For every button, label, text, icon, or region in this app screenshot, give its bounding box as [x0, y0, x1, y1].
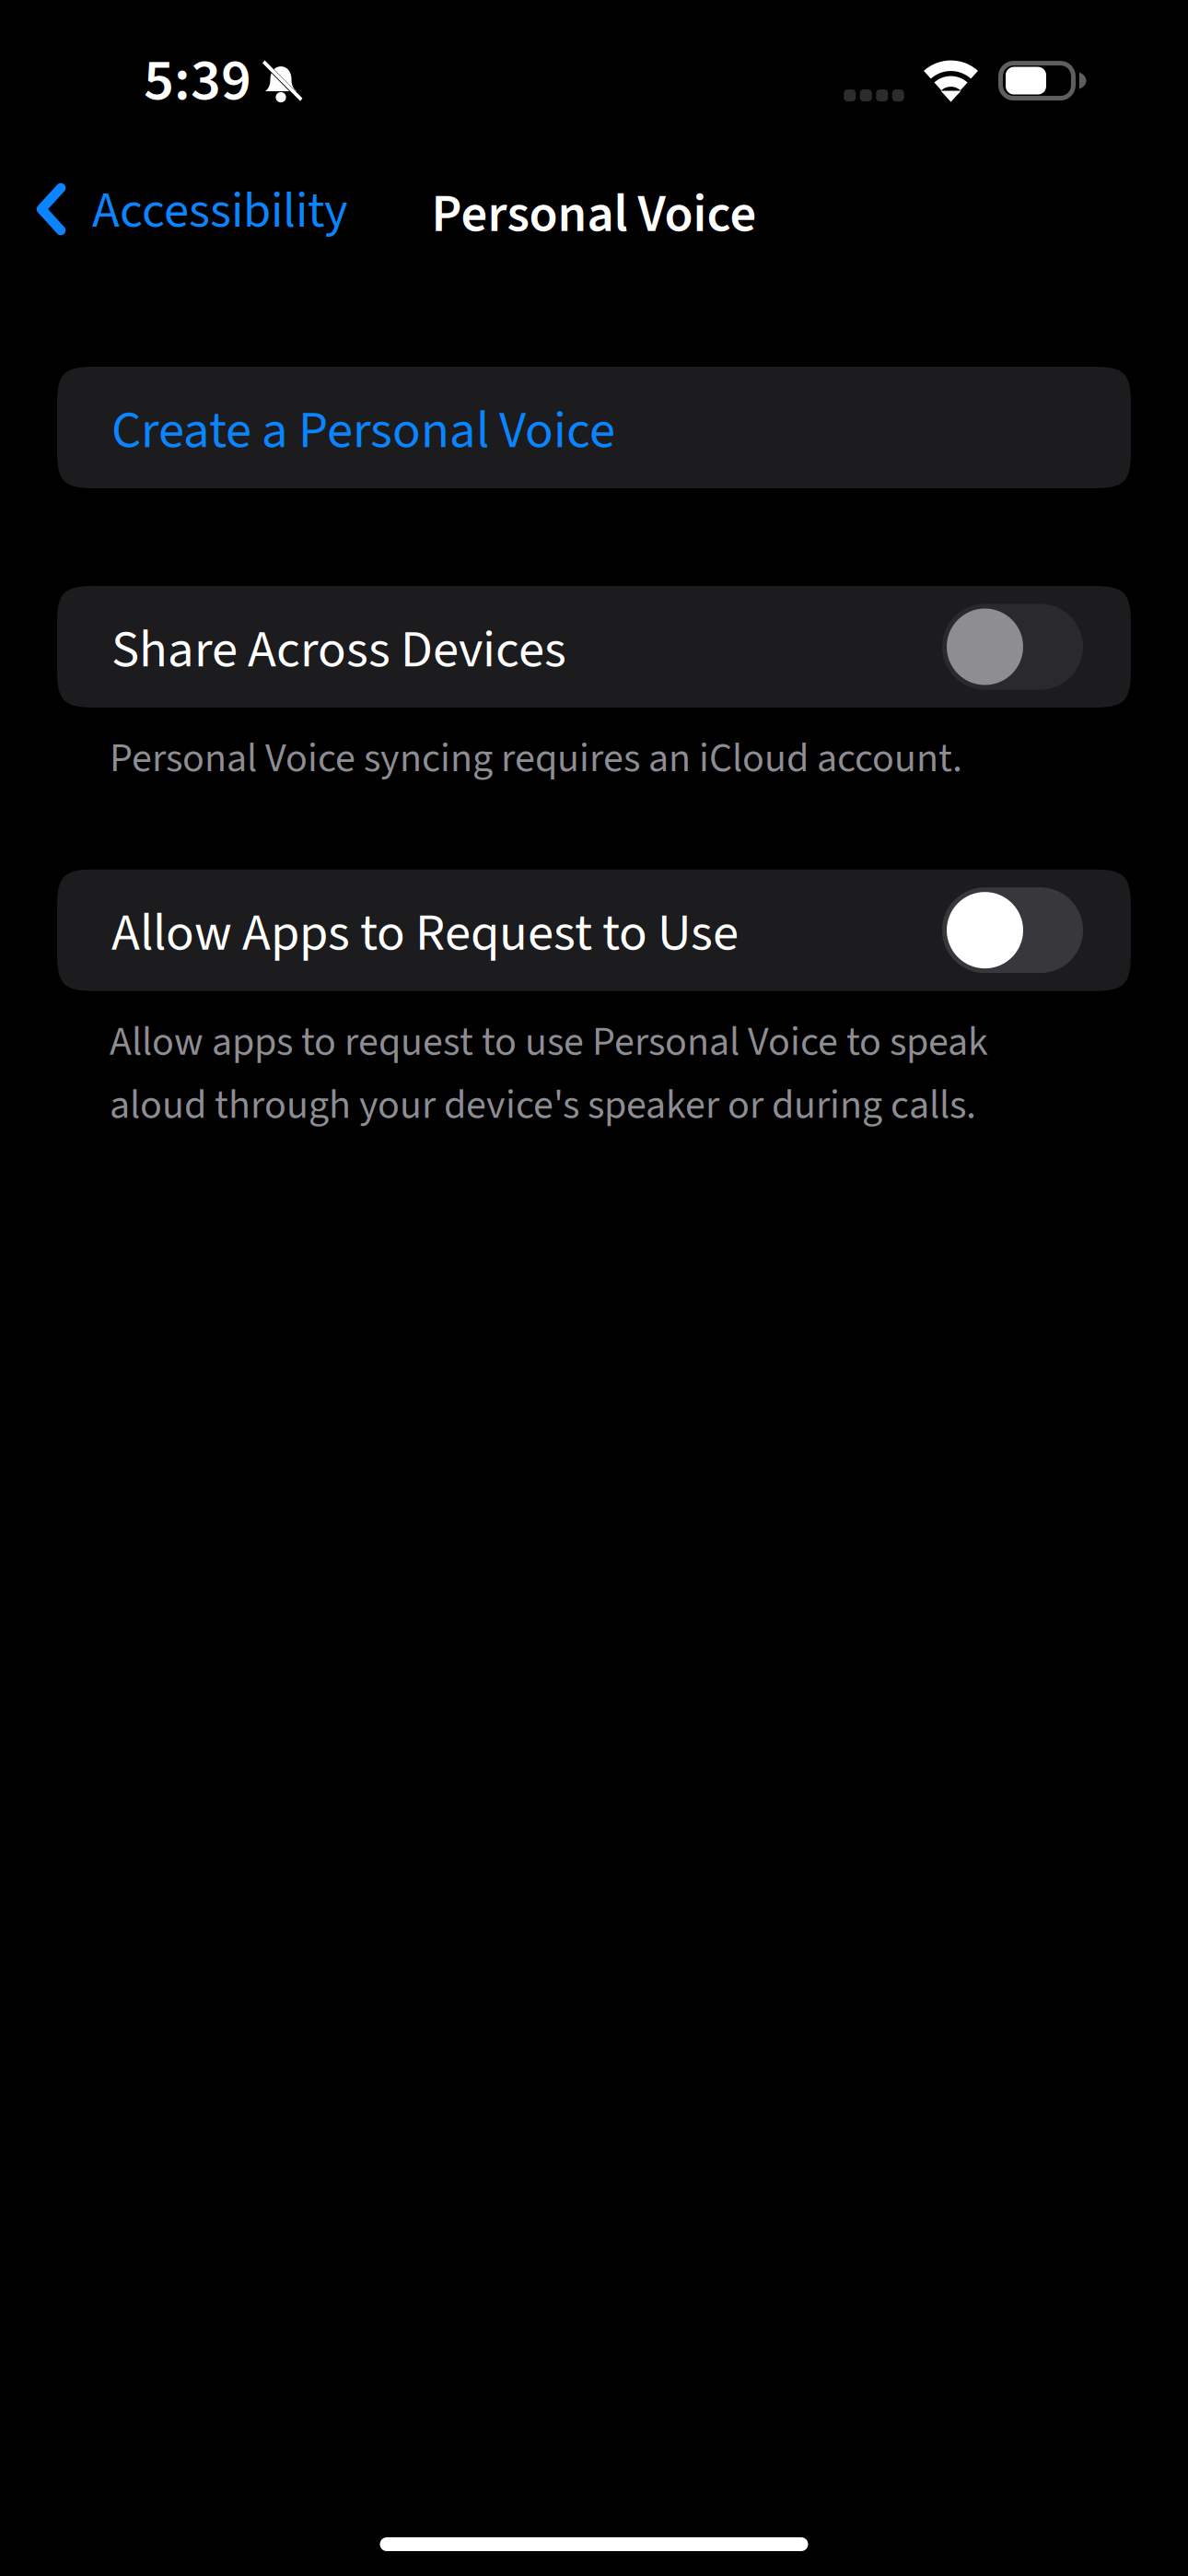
staticText: Create a Personal Voice: [111, 394, 615, 468]
staticText: Allow apps to request to use Personal Vo…: [110, 1013, 988, 1134]
staticText: Allow Apps to Request to Use: [111, 896, 739, 971]
button[interactable]: Create a Personal Voice: [0, 367, 1188, 488]
staticText: 5:39: [144, 39, 251, 123]
button[interactable]: Accessibility: [0, 158, 370, 264]
staticText: Personal Voice: [431, 178, 757, 252]
button[interactable]: Off: [942, 887, 1083, 973]
button[interactable]: Off: [942, 604, 1083, 690]
staticText: Share Across Devices: [111, 613, 566, 687]
staticText: Accessibility: [92, 175, 348, 247]
staticText: Personal Voice syncing requires an iClou…: [110, 730, 962, 787]
